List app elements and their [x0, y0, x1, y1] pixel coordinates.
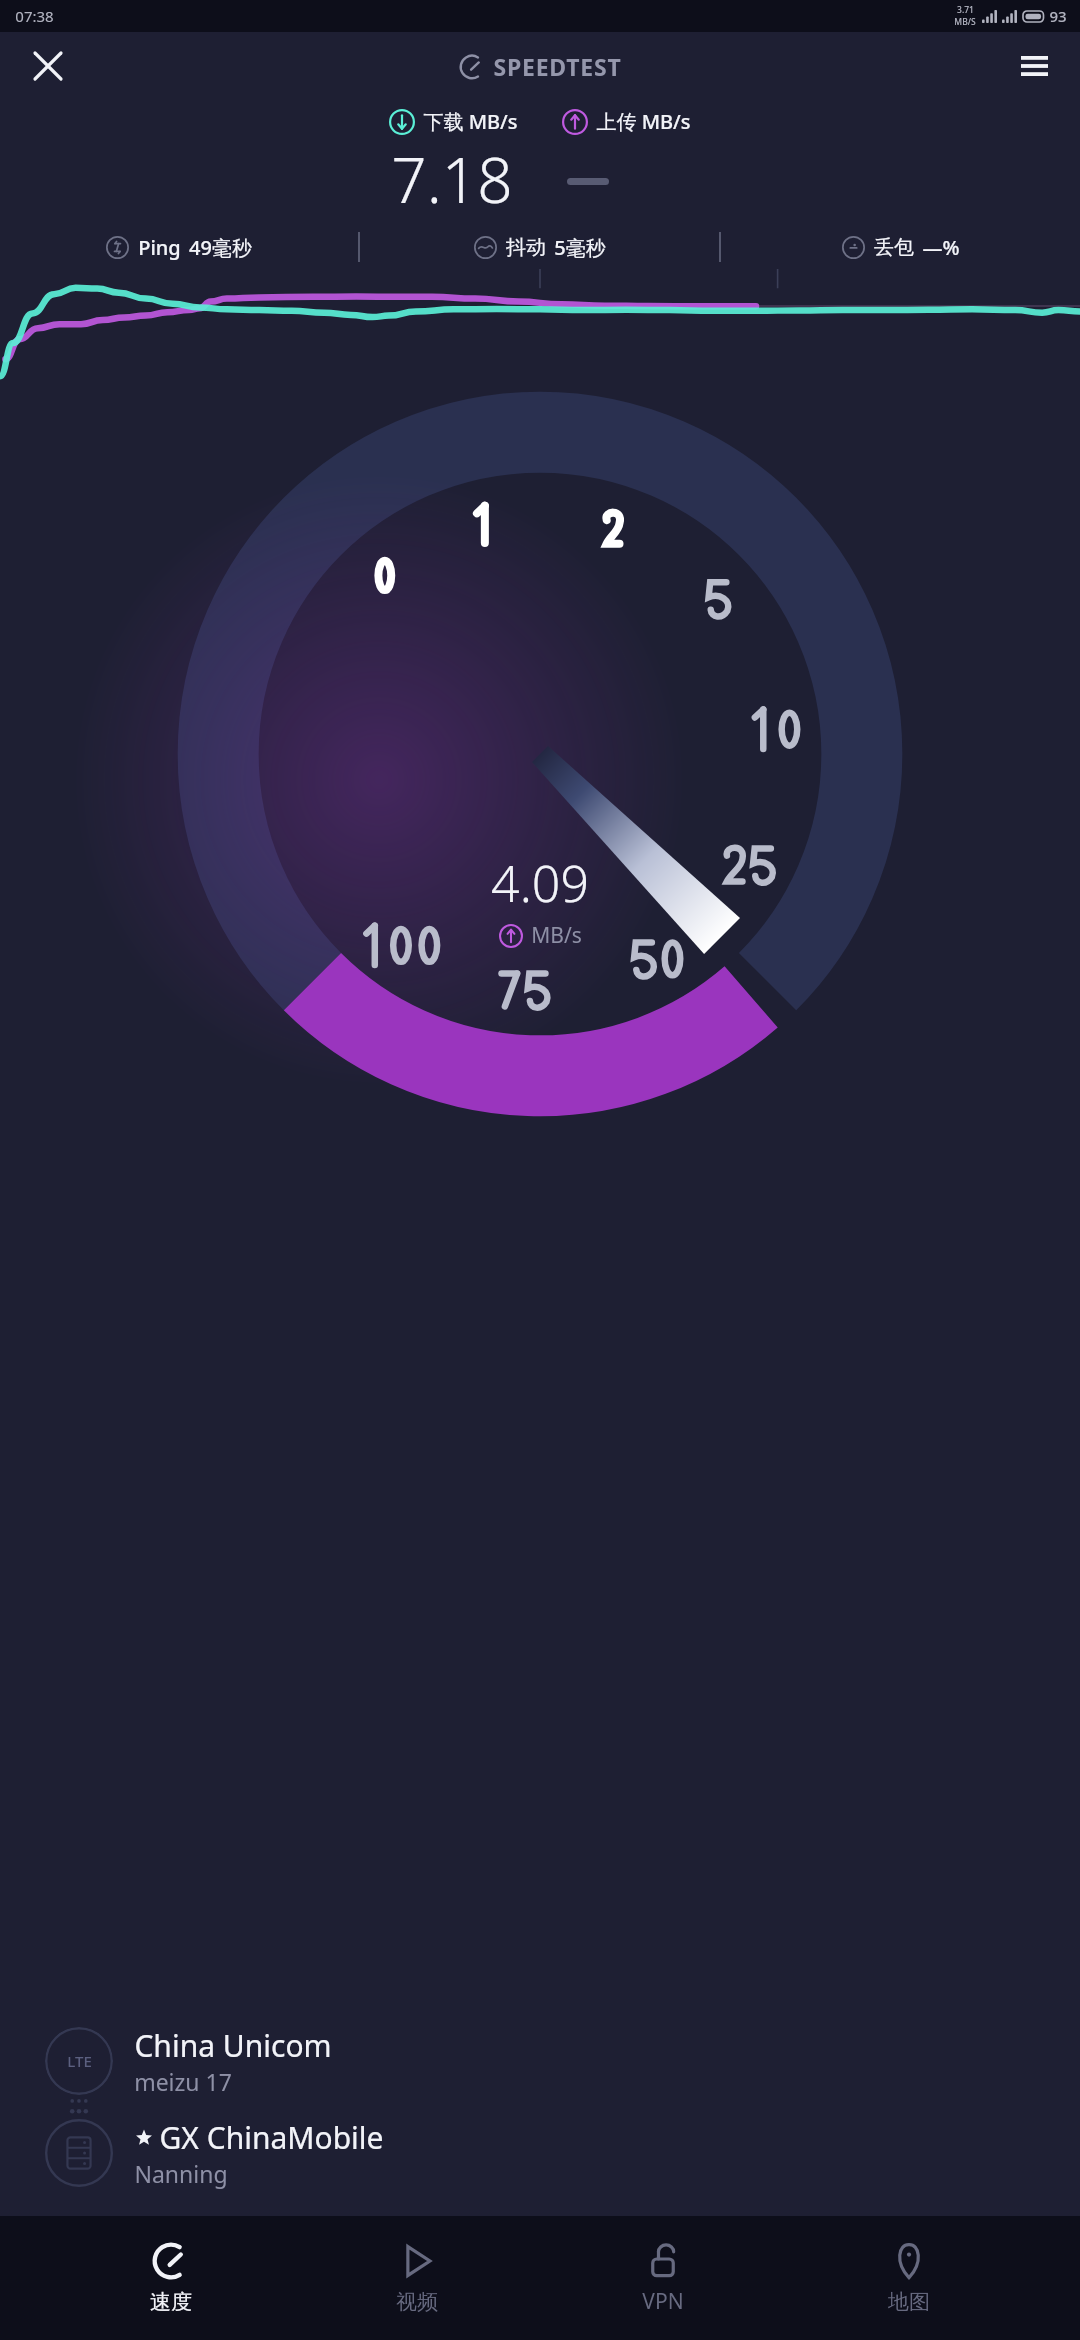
- button[interactable]: GX ChinaMobile: [42, 2116, 384, 2190]
- staticText: meizu 17: [134, 2066, 232, 2097]
- button[interactable]: VPN: [588, 2234, 738, 2322]
- staticText: 地图: [888, 2289, 930, 2315]
- staticText: SPEEDTEST: [493, 51, 622, 82]
- button[interactable]: 抖动: [474, 234, 606, 261]
- staticText: MB/s: [531, 921, 582, 950]
- staticText: MB/S: [954, 16, 976, 28]
- staticText: —%: [922, 234, 960, 261]
- button[interactable]: LTE: [42, 2024, 332, 2098]
- button[interactable]: Menu: [1010, 42, 1058, 90]
- button[interactable]: 速度: [96, 2236, 246, 2321]
- staticText: China Unicom: [134, 2025, 332, 2066]
- staticText: 3.71: [957, 4, 974, 16]
- staticText: Ping: [138, 234, 181, 261]
- staticText: 4.09: [491, 849, 589, 917]
- button[interactable]: 视频: [342, 2236, 492, 2321]
- staticText: 抖动: [506, 235, 546, 260]
- staticText: 视频: [396, 2289, 438, 2315]
- staticText: LTE: [67, 2051, 92, 2071]
- staticText: 5毫秒: [554, 234, 606, 261]
- staticText: 丢包: [874, 235, 914, 260]
- staticText: 93: [1049, 6, 1067, 26]
- staticText: VPN: [642, 2287, 684, 2316]
- button[interactable]: Ping: [106, 234, 252, 261]
- button[interactable]: 丢包: [842, 234, 960, 261]
- staticText: 下载 MB/s: [423, 108, 518, 135]
- staticText: Nanning: [134, 2158, 228, 2189]
- button[interactable]: SPEEDTEST: [459, 51, 622, 82]
- staticText: 速度: [150, 2289, 192, 2315]
- staticText: 49毫秒: [189, 234, 252, 261]
- staticText: 07:38: [15, 6, 54, 26]
- staticText: 上传 MB/s: [596, 108, 691, 135]
- staticText: 7.18: [391, 137, 513, 221]
- button[interactable]: 地图: [834, 2236, 984, 2321]
- staticText: GX ChinaMobile: [159, 2117, 384, 2158]
- button[interactable]: Close: [24, 42, 72, 90]
